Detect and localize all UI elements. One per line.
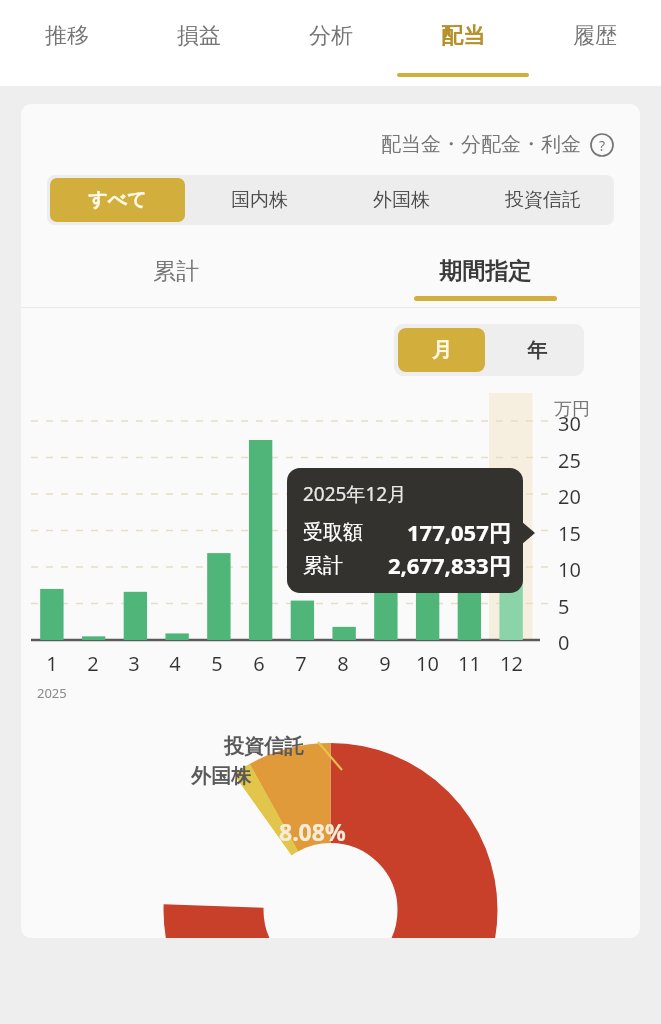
staticText: 期間指定	[439, 257, 531, 286]
button[interactable]: 年	[493, 328, 580, 372]
staticText: 外国株	[191, 764, 251, 789]
staticText: 1	[46, 650, 58, 677]
staticText: 年	[527, 338, 547, 363]
button[interactable]: 推移	[0, 0, 133, 86]
staticText: 5	[211, 650, 223, 677]
staticText: 4	[169, 650, 181, 677]
staticText: 30	[558, 410, 581, 437]
staticText: 7	[295, 650, 307, 677]
staticText: 25	[558, 447, 581, 474]
button[interactable]: 履歴	[529, 0, 661, 86]
button[interactable]: 期間指定	[330, 245, 640, 307]
staticText: 累計	[153, 257, 199, 286]
staticText: 分析	[309, 22, 353, 50]
staticText: 8	[337, 650, 349, 677]
staticText: 12	[500, 650, 523, 677]
staticText: 177,057円	[407, 517, 511, 547]
staticText: 6	[253, 650, 265, 677]
button[interactable]: 国内株	[191, 178, 327, 222]
staticText: 8.08%	[279, 816, 346, 847]
staticText: 2	[87, 650, 99, 677]
staticText: 配当金・分配金・利金	[381, 132, 581, 157]
staticText: 投資信託	[505, 188, 581, 212]
staticText: 2025年12月	[303, 481, 407, 507]
button[interactable]: 累計	[21, 245, 330, 307]
staticText: 9	[379, 650, 391, 677]
staticText: 15	[558, 520, 581, 547]
button[interactable]: 分析	[265, 0, 397, 86]
staticText: ?	[599, 136, 606, 155]
staticText: 履歴	[573, 22, 617, 50]
staticText: 5	[558, 593, 570, 620]
staticText: 損益	[177, 22, 221, 50]
staticText: 3	[128, 650, 140, 677]
staticText: 20	[558, 483, 581, 510]
button[interactable]: 配当	[397, 0, 529, 86]
staticText: 11	[458, 650, 481, 677]
staticText: 推移	[45, 22, 89, 50]
staticText: 受取額	[303, 520, 363, 545]
button[interactable]: ヘルプ	[590, 133, 614, 157]
staticText: 累計	[303, 553, 343, 578]
button[interactable]: 月	[398, 328, 485, 372]
staticText: 10	[416, 650, 439, 677]
staticText: 配当	[441, 22, 485, 50]
button[interactable]: 損益	[133, 0, 265, 86]
staticText: 万円	[554, 398, 590, 421]
staticText: 0	[558, 629, 570, 656]
staticText: 投資信託	[224, 734, 304, 759]
button[interactable]: すべて	[50, 178, 185, 222]
staticText: 月	[432, 338, 452, 363]
button[interactable]: 投資信託	[475, 178, 611, 222]
staticText: 国内株	[231, 188, 288, 212]
staticText: 外国株	[373, 188, 430, 212]
staticText: 10	[558, 556, 581, 583]
staticText: すべて	[88, 188, 147, 212]
staticText: 2025	[37, 684, 67, 702]
button[interactable]: 外国株	[333, 178, 469, 222]
staticText: 2,677,833円	[388, 550, 511, 580]
